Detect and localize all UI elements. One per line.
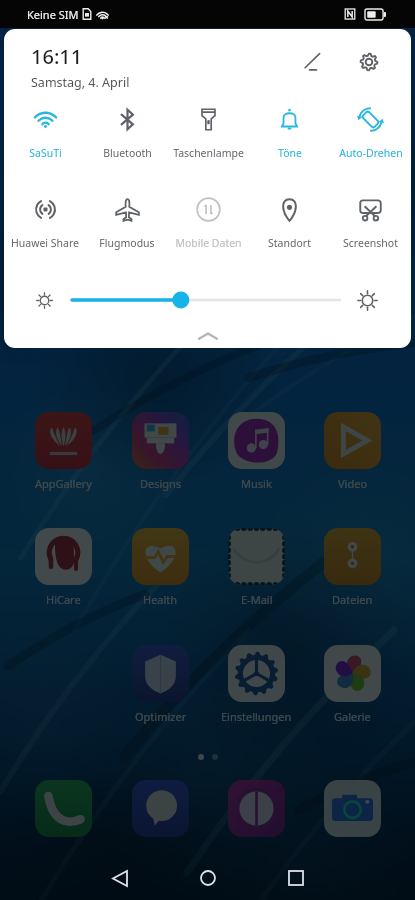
staticText: Health — [143, 592, 178, 607]
staticText: Töne — [278, 146, 302, 160]
staticText: Samstag, 4. April — [31, 74, 130, 91]
button[interactable]: Telefon — [35, 780, 92, 837]
staticText: Galerie — [334, 709, 371, 724]
staticText: AppGallery — [35, 476, 92, 491]
staticText: HiCare — [46, 592, 81, 607]
staticText: Optimizer — [135, 709, 187, 724]
button[interactable]: Startbildschirm — [176, 856, 240, 900]
button[interactable]: HiCare — [35, 528, 92, 607]
button[interactable]: Screenshot — [330, 191, 411, 250]
button[interactable]: Taschenlampe — [168, 101, 249, 160]
button[interactable]: Dateien — [324, 528, 381, 607]
button[interactable]: AppGallery — [35, 412, 92, 491]
button[interactable]: Übersicht — [264, 856, 328, 900]
button[interactable]: Optimizer — [132, 645, 189, 724]
button[interactable]: Nachrichten — [132, 780, 189, 837]
staticText: 16:11 — [31, 43, 83, 70]
button[interactable]: Huawei Share — [4, 191, 86, 250]
button[interactable]: Auto-Drehen — [330, 101, 411, 160]
button[interactable]: Galerie — [324, 645, 381, 724]
staticText: SaSuTi — [29, 146, 62, 160]
button[interactable]: Standort — [249, 191, 330, 250]
staticText: Flugmodus — [99, 236, 155, 250]
button[interactable]: Musik — [228, 412, 285, 491]
button[interactable]: Designs — [132, 412, 189, 491]
staticText: Screenshot — [343, 236, 398, 250]
button[interactable]: Bluetooth — [86, 101, 168, 160]
staticText: Taschenlampe — [173, 146, 244, 160]
button[interactable]: E-Mail — [228, 528, 285, 607]
button[interactable]: Einstellungen — [348, 41, 390, 83]
staticText: Dateien — [332, 592, 373, 607]
staticText: E-Mail — [241, 592, 273, 607]
staticText: Musik — [241, 476, 272, 491]
staticText: Designs — [140, 476, 182, 491]
staticText: Einstellungen — [221, 709, 292, 724]
button[interactable]: SaSuTi — [4, 101, 86, 160]
button[interactable]: Töne — [249, 101, 330, 160]
button[interactable]: Zurück — [88, 856, 152, 900]
button[interactable]: Mobile Daten — [168, 191, 249, 250]
button[interactable]: Kamera — [324, 780, 381, 837]
button[interactable]: Flugmodus — [86, 191, 168, 250]
staticText: Mobile Daten — [175, 236, 242, 250]
button[interactable]: Helligkeit — [36, 276, 378, 324]
button[interactable]: Bearbeiten — [292, 41, 334, 83]
button[interactable]: Einstellungen — [221, 645, 292, 724]
staticText: Standort — [268, 236, 311, 250]
button[interactable]: Video — [324, 412, 381, 491]
staticText: Huawei Share — [11, 236, 79, 250]
staticText: Video — [338, 476, 368, 491]
button[interactable]: Health — [132, 528, 189, 607]
button[interactable]: Browser — [228, 780, 285, 837]
staticText: Auto-Drehen — [339, 146, 403, 160]
button[interactable]: Einklappen — [4, 325, 411, 347]
staticText: Bluetooth — [103, 146, 152, 160]
staticText: Keine SIM — [27, 7, 79, 22]
